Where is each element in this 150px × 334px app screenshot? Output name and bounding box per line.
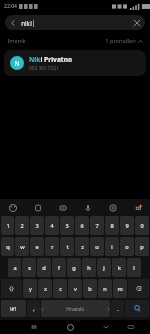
button[interactable]: r	[45, 237, 59, 256]
staticText: v	[74, 285, 77, 293]
button[interactable]: y	[23, 279, 37, 298]
button[interactable]: v	[68, 279, 82, 298]
staticText: c	[59, 285, 62, 293]
button[interactable]: 8	[105, 216, 119, 235]
button[interactable]: h	[82, 258, 96, 277]
staticText: 0	[140, 222, 144, 230]
button[interactable]: Recents	[27, 320, 41, 334]
staticText: ,	[33, 305, 35, 312]
button[interactable]: z	[75, 237, 89, 256]
button[interactable]: f	[52, 258, 66, 277]
button[interactable]: p	[135, 237, 149, 256]
staticText: l	[133, 264, 135, 272]
button[interactable]: Emoji	[6, 201, 19, 214]
button[interactable]: s	[22, 258, 36, 277]
staticText: 7	[95, 222, 99, 230]
button[interactable]: 0	[135, 216, 149, 235]
button[interactable]: 5	[60, 216, 74, 235]
staticText: 1 pronađen	[105, 37, 136, 45]
staticText: 9	[125, 222, 129, 230]
button[interactable]: c	[53, 279, 67, 298]
button[interactable]: 2	[15, 216, 29, 235]
staticText: 5	[65, 222, 69, 230]
staticText: p	[140, 243, 144, 251]
staticText: a	[13, 264, 17, 272]
staticText: Niki Privatno	[29, 55, 73, 64]
button[interactable]: Switch keyboard	[125, 321, 137, 333]
button[interactable]: x	[38, 279, 52, 298]
staticText: e	[35, 243, 39, 251]
button[interactable]: 7	[90, 216, 104, 235]
button[interactable]: 9	[120, 216, 134, 235]
button[interactable]: Clear	[129, 15, 145, 30]
staticText: .	[117, 305, 119, 312]
staticText: x	[44, 285, 47, 293]
staticText: f	[58, 264, 60, 272]
staticText: Imenik	[7, 37, 26, 45]
staticText: y	[29, 285, 32, 293]
button[interactable]: 3	[30, 216, 44, 235]
staticText: g	[72, 264, 76, 272]
staticText: j	[103, 264, 105, 272]
staticText: Hrvatski	[66, 306, 84, 312]
button[interactable]: n	[98, 279, 112, 298]
button[interactable]: !#1	[1, 300, 26, 317]
staticText: !#1	[10, 306, 17, 312]
button[interactable]: Search	[125, 300, 149, 317]
button[interactable]: Shift	[1, 279, 22, 298]
staticText: z	[81, 243, 84, 251]
button[interactable]: .	[111, 300, 124, 317]
button[interactable]: i	[105, 237, 119, 256]
staticText: 3	[35, 222, 39, 230]
button[interactable]: Text mode	[56, 201, 69, 214]
staticText: 4	[50, 222, 54, 230]
button[interactable]: b	[83, 279, 97, 298]
button[interactable]: More options	[131, 201, 144, 214]
button[interactable]: e	[30, 237, 44, 256]
staticText: 1	[6, 222, 10, 230]
button[interactable]: a	[8, 258, 21, 277]
staticText: d	[42, 264, 46, 272]
staticText: q	[6, 243, 10, 251]
button[interactable]: Voice input	[81, 201, 94, 214]
button[interactable]: g	[67, 258, 81, 277]
button[interactable]: m	[113, 279, 127, 298]
staticText: u	[95, 243, 99, 251]
staticText: n	[103, 285, 107, 293]
staticText: nik	[21, 19, 30, 27]
button[interactable]: N	[4, 50, 146, 76]
button[interactable]: Hide keyboard	[99, 320, 113, 334]
button[interactable]: Back	[5, 15, 21, 30]
staticText: N	[14, 59, 20, 68]
button[interactable]: 1	[1, 216, 14, 235]
button[interactable]: Hrvatski	[41, 300, 110, 317]
staticText: 8	[110, 222, 114, 230]
button[interactable]: l	[127, 258, 141, 277]
staticText: m	[117, 285, 123, 293]
button[interactable]: w	[15, 237, 29, 256]
button[interactable]: Home	[63, 320, 77, 334]
button[interactable]: k	[112, 258, 126, 277]
button[interactable]: ,	[27, 300, 40, 317]
button[interactable]: d	[37, 258, 51, 277]
button[interactable]: Clipboard	[31, 201, 44, 214]
staticText: i	[30, 19, 32, 27]
staticText: t	[66, 243, 69, 251]
staticText: b	[88, 285, 92, 293]
button[interactable]: Imenik	[7, 32, 143, 50]
button[interactable]: u	[90, 237, 104, 256]
staticText: w	[20, 243, 25, 251]
button[interactable]: t	[60, 237, 74, 256]
staticText: 092 365 5321	[29, 65, 59, 72]
staticText: i	[111, 243, 113, 251]
button[interactable]: 6	[75, 216, 89, 235]
button[interactable]: o	[120, 237, 134, 256]
button[interactable]: j	[97, 258, 111, 277]
staticText: s	[28, 264, 31, 272]
staticText: r	[51, 243, 54, 251]
button[interactable]: 4	[45, 216, 59, 235]
button[interactable]: q	[1, 237, 14, 256]
button[interactable]: Backspace	[128, 279, 149, 298]
button[interactable]: Settings	[106, 201, 119, 214]
staticText: 6	[80, 222, 84, 230]
